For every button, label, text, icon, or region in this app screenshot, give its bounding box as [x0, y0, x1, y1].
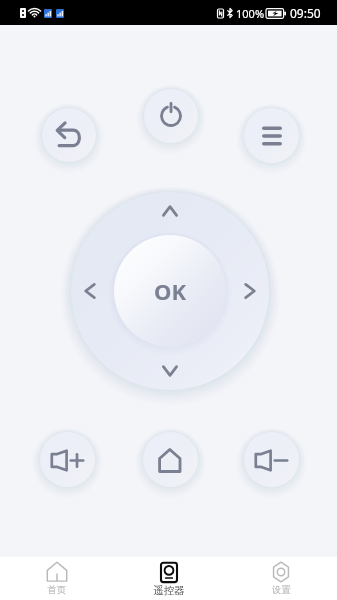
- button[interactable]: Volume down: [244, 432, 299, 487]
- staticText: 首页: [47, 584, 66, 596]
- button[interactable]: Menu: [244, 108, 299, 163]
- button[interactable]: 遥控器: [113, 557, 225, 600]
- staticText: 100%: [236, 6, 265, 21]
- staticText: OK: [154, 276, 187, 306]
- button[interactable]: Power: [144, 89, 198, 143]
- button[interactable]: Volume up: [40, 432, 95, 487]
- staticText: 遥控器: [153, 584, 185, 597]
- staticText: 09:50: [290, 5, 321, 21]
- button[interactable]: OK: [114, 235, 226, 347]
- button[interactable]: 首页: [0, 557, 113, 600]
- button[interactable]: Back: [42, 108, 96, 162]
- staticText: 设置: [272, 584, 291, 596]
- button[interactable]: Home: [143, 432, 198, 487]
- button[interactable]: 设置: [225, 557, 337, 600]
